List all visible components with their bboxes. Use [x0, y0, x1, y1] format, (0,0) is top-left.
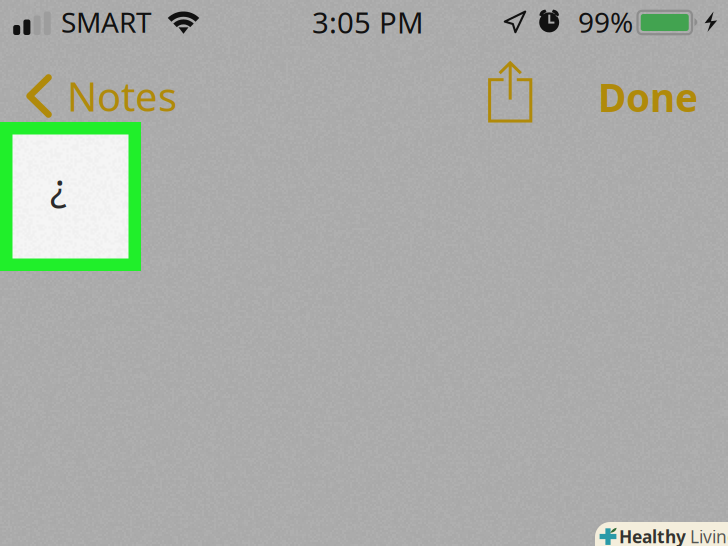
button[interactable]: Share [488, 62, 532, 122]
staticText: 3:05 PM [312, 2, 424, 41]
staticText: Notes [67, 69, 177, 122]
staticText: Done [598, 71, 698, 123]
staticText: Living [690, 525, 728, 546]
staticText: SMART [61, 3, 152, 41]
button[interactable]: Done [598, 71, 708, 123]
staticText: ¿ [50, 161, 67, 212]
staticText: 99% [578, 3, 633, 41]
staticText: Healthy [619, 525, 686, 546]
button[interactable]: Notes [26, 68, 216, 124]
